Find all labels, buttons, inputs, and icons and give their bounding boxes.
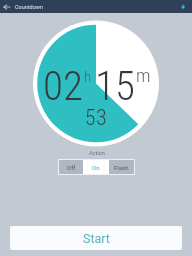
staticText: h	[84, 68, 92, 86]
staticText: Start	[83, 231, 110, 246]
staticText: Action	[89, 150, 105, 156]
staticText: Flash	[114, 164, 129, 171]
staticText: Countdown	[15, 4, 43, 10]
staticText: 53	[0, 105, 192, 131]
staticText: Off	[67, 164, 76, 171]
staticText: 02	[43, 62, 83, 110]
staticText: On	[92, 164, 100, 171]
staticText: m	[136, 64, 151, 86]
staticText: 15	[95, 62, 135, 110]
